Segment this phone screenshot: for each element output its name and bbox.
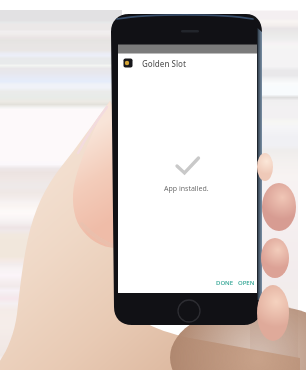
button[interactable]: OPEN <box>236 276 258 289</box>
staticText: OPEN <box>238 279 255 287</box>
button[interactable]: DONE <box>214 276 236 289</box>
staticText: DONE <box>216 279 234 287</box>
staticText: Golden Slot <box>142 58 187 69</box>
staticText: App installed. <box>164 184 209 194</box>
